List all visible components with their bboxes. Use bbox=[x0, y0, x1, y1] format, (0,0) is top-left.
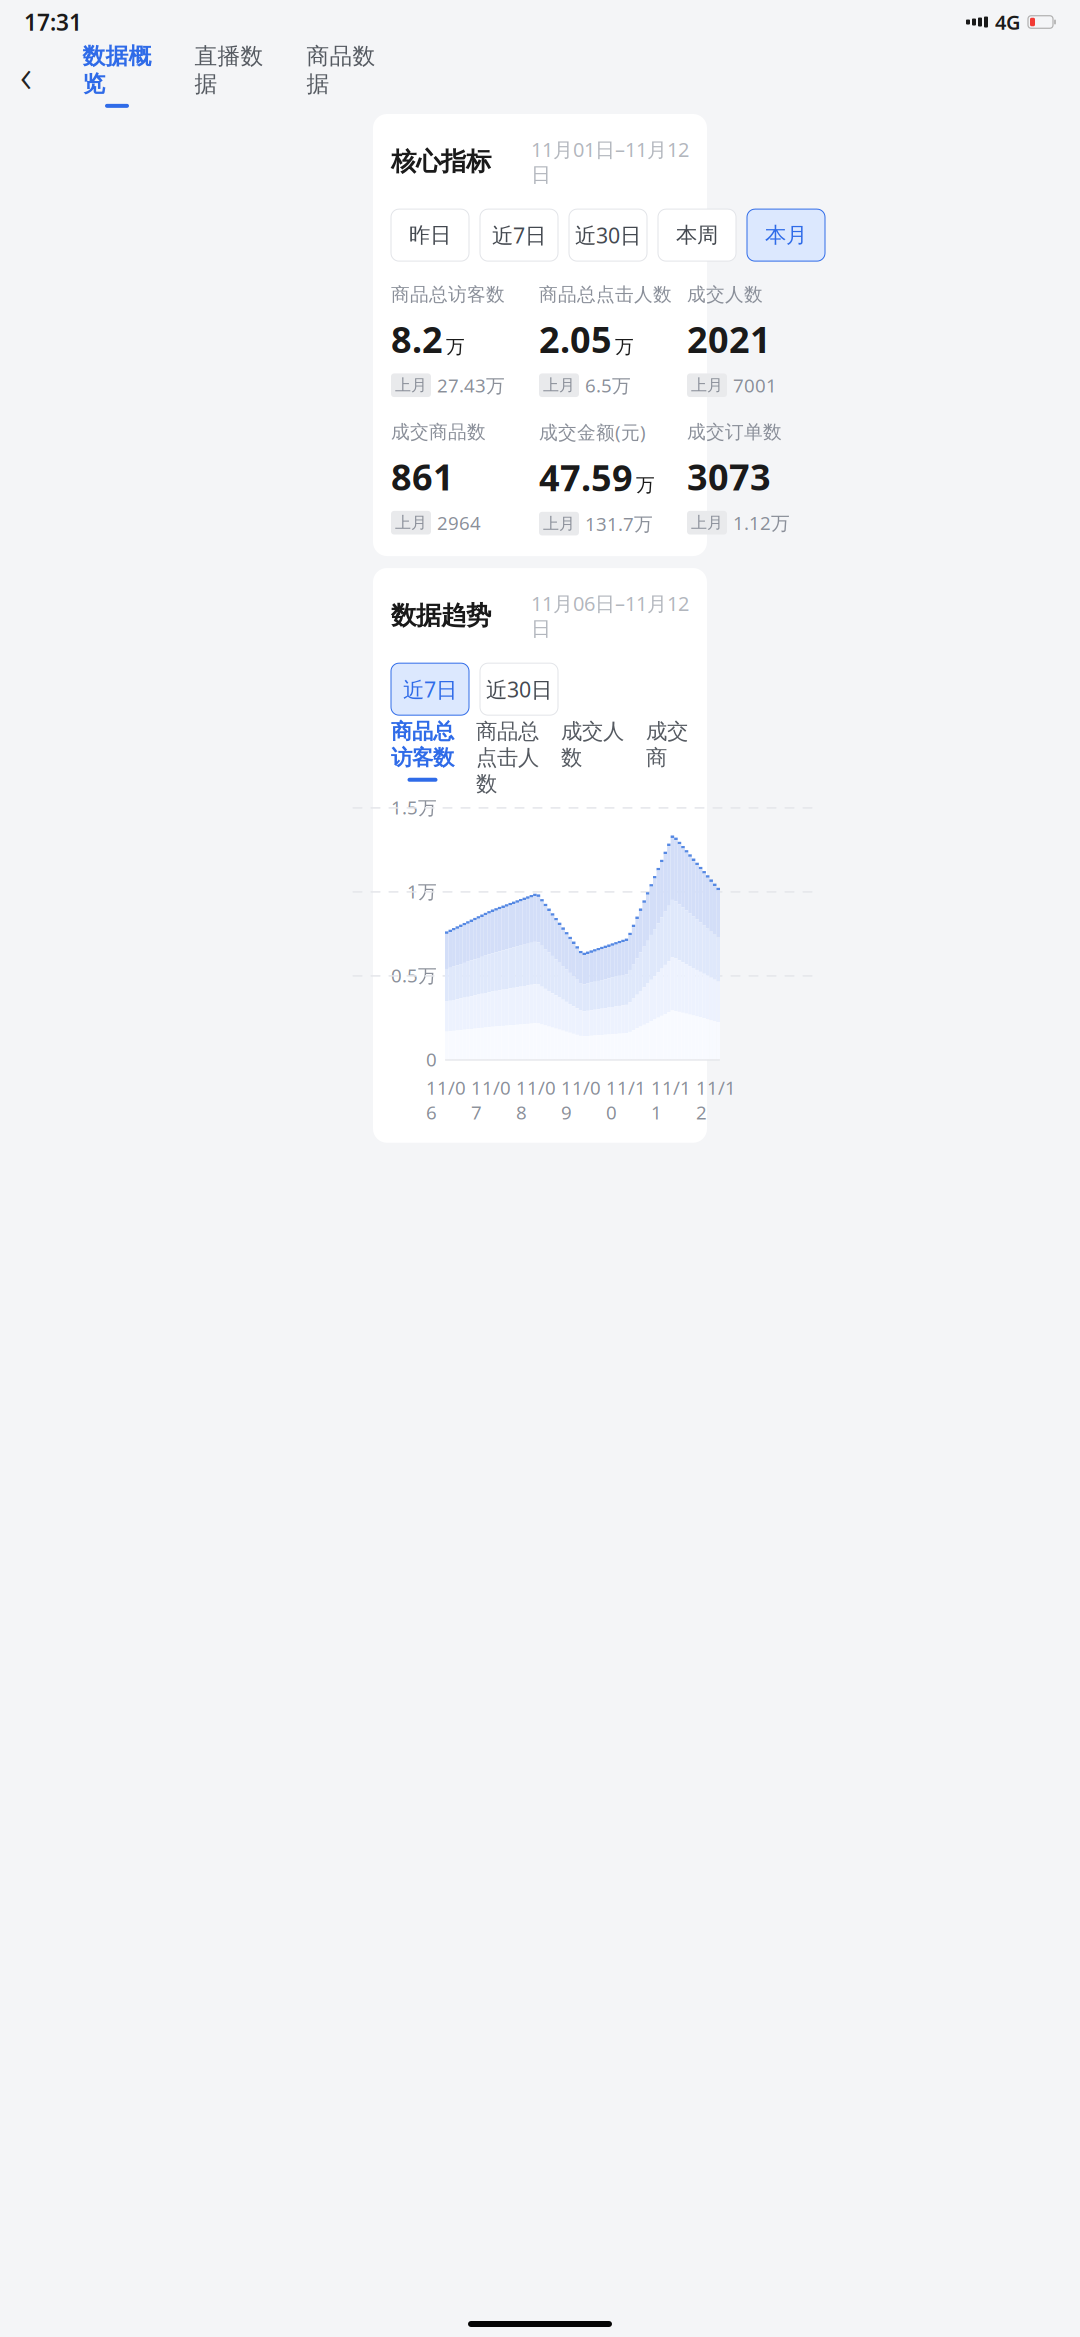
staticText: 8.2 bbox=[391, 315, 443, 363]
staticText: 上月 bbox=[543, 514, 575, 533]
staticText: 成交商 bbox=[646, 718, 688, 771]
staticText: 11/08 bbox=[516, 1075, 556, 1125]
staticText: 11/10 bbox=[606, 1075, 646, 1125]
staticText: 11月06日–11月12日 bbox=[531, 590, 689, 641]
staticText: 近7日 bbox=[492, 221, 546, 249]
staticText: 11/12 bbox=[696, 1075, 736, 1125]
staticText: 数据概览 bbox=[82, 42, 151, 98]
staticText: 2.05 bbox=[539, 315, 612, 363]
staticText: 27.43万 bbox=[437, 373, 505, 398]
staticText: 2964 bbox=[437, 510, 481, 535]
staticText: 商品总点击人数 bbox=[539, 283, 672, 306]
button[interactable]: 商品数据 bbox=[298, 42, 384, 108]
button[interactable]: 数据概览 bbox=[74, 42, 160, 108]
staticText: 万 bbox=[446, 335, 465, 358]
staticText: 本月 bbox=[765, 222, 807, 248]
button[interactable]: 本月 bbox=[747, 209, 825, 261]
staticText: 商品总访客数 bbox=[391, 283, 505, 306]
staticText: 核心指标 bbox=[391, 146, 491, 177]
staticText: 11/06 bbox=[426, 1075, 466, 1125]
staticText: ‹ bbox=[20, 45, 32, 105]
staticText: 861 bbox=[391, 452, 454, 500]
staticText: 商品总访客数 bbox=[391, 718, 454, 771]
button[interactable]: 近7日 bbox=[391, 663, 469, 715]
staticText: 11/11 bbox=[651, 1075, 691, 1125]
staticText: 131.7万 bbox=[585, 511, 653, 536]
button[interactable]: 成交人数 bbox=[561, 718, 624, 782]
staticText: 7001 bbox=[733, 373, 777, 398]
staticText: 直播数据 bbox=[194, 42, 263, 98]
staticText: 万 bbox=[636, 474, 655, 496]
staticText: 1.5万 bbox=[391, 795, 437, 820]
button[interactable]: 昨日 bbox=[391, 209, 469, 261]
staticText: 0.5万 bbox=[391, 963, 437, 988]
staticText: 近7日 bbox=[403, 675, 457, 703]
staticText: 近30日 bbox=[575, 221, 641, 249]
staticText: 成交商品数 bbox=[391, 421, 486, 443]
staticText: 上月 bbox=[691, 375, 723, 395]
button[interactable]: 本周 bbox=[658, 209, 736, 261]
staticText: 0 bbox=[426, 1047, 437, 1072]
staticText: 成交订单数 bbox=[687, 421, 782, 443]
button[interactable]: 商品总点击人数 bbox=[476, 718, 539, 808]
staticText: 数据趋势 bbox=[391, 600, 491, 631]
staticText: 上月 bbox=[395, 375, 427, 395]
button[interactable]: 直播数据 bbox=[186, 42, 272, 108]
staticText: 本周 bbox=[676, 222, 718, 248]
staticText: 1.12万 bbox=[733, 510, 790, 535]
staticText: 上月 bbox=[691, 513, 723, 533]
staticText: 昨日 bbox=[409, 222, 451, 248]
staticText: 成交金额(元) bbox=[539, 420, 646, 444]
staticText: 上月 bbox=[395, 513, 427, 533]
button[interactable]: 返回 bbox=[0, 53, 52, 97]
staticText: 万 bbox=[615, 335, 634, 358]
staticText: 11/07 bbox=[471, 1075, 511, 1125]
staticText: 11/09 bbox=[561, 1075, 601, 1125]
staticText: 商品总点击人数 bbox=[476, 718, 539, 797]
staticText: 商品数据 bbox=[306, 42, 375, 98]
staticText: 17:31 bbox=[24, 7, 82, 37]
staticText: 2021 bbox=[687, 315, 771, 363]
staticText: 3073 bbox=[687, 452, 771, 500]
button[interactable]: 近30日 bbox=[480, 663, 558, 715]
staticText: 47.59 bbox=[539, 453, 633, 501]
button[interactable]: 近7日 bbox=[480, 209, 558, 261]
button[interactable]: 成交商 bbox=[646, 718, 688, 782]
staticText: 近30日 bbox=[486, 675, 552, 703]
button[interactable]: 近30日 bbox=[569, 209, 647, 261]
staticText: 成交人数 bbox=[561, 718, 624, 771]
staticText: 成交人数 bbox=[687, 283, 763, 306]
staticText: 6.5万 bbox=[585, 373, 631, 398]
staticText: 4G bbox=[995, 9, 1021, 35]
staticText: 上月 bbox=[543, 375, 575, 395]
button[interactable]: 商品总访客数 bbox=[391, 718, 454, 782]
staticText: 11月01日–11月12日 bbox=[531, 136, 689, 187]
staticText: 1万 bbox=[407, 879, 437, 904]
